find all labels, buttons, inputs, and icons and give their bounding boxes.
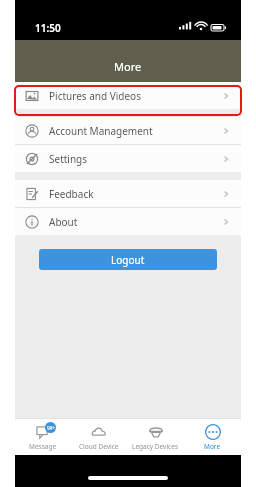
staticText: More <box>114 59 142 74</box>
button[interactable]: Legacy Devices <box>127 419 184 455</box>
button[interactable]: Pictures and Videos <box>15 82 241 109</box>
button[interactable]: Feedback <box>15 180 241 207</box>
staticText: Cloud Device <box>79 442 119 451</box>
staticText: Settings <box>49 152 88 166</box>
staticText: About <box>49 215 78 229</box>
button[interactable]: Account Management <box>15 117 241 144</box>
button[interactable]: Cloud Device <box>71 419 127 455</box>
staticText: Pictures and Videos <box>49 89 141 103</box>
staticText: Message <box>29 442 57 451</box>
button[interactable]: Logout <box>39 249 217 270</box>
staticText: Logout <box>111 253 145 267</box>
button[interactable]: Settings <box>15 145 241 172</box>
button[interactable]: 99+ <box>15 419 71 455</box>
staticText: Legacy Devices <box>132 442 179 451</box>
button[interactable]: About <box>15 208 241 235</box>
staticText: 99+ <box>47 425 55 431</box>
staticText: Feedback <box>49 187 94 201</box>
staticText: Account Management <box>49 124 153 138</box>
staticText: More <box>204 442 221 451</box>
button[interactable]: More <box>184 419 241 455</box>
staticText: 11:50 <box>35 21 61 35</box>
